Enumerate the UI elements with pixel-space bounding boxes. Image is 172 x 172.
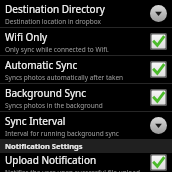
other: Checked [150,61,167,78]
other: Checked [150,154,167,171]
other: Checked [150,89,167,106]
other: Open list [150,117,167,134]
button[interactable]: Sync Interval [0,112,172,139]
staticText: Wifi Only [5,30,48,44]
other: Open list [150,5,167,22]
staticText: Interval for running background sync [5,129,119,138]
button[interactable]: Automatic Sync [0,56,172,83]
staticText: Syncs photos automatically after taken [5,73,124,82]
staticText: Only sync while connected to Wifi. [5,45,109,54]
staticText: Sync Interval [5,114,66,128]
button[interactable]: Wifi Only [0,28,172,55]
staticText: Automatic Sync [5,58,78,72]
button[interactable]: Upload Notification [0,153,172,172]
staticText: Notifies the user upon successful file u… [5,168,140,172]
other: Checked [150,33,167,50]
staticText: Notification Settings [5,141,83,151]
button[interactable]: Destination Directory [0,0,172,27]
staticText: Upload Notification [5,153,97,167]
staticText: Background Sync [5,86,87,100]
staticText: Syncs photos in the background [5,101,103,110]
staticText: Destination location in dropbox [5,17,102,26]
button[interactable]: Background Sync [0,84,172,111]
staticText: Destination Directory [5,2,105,16]
